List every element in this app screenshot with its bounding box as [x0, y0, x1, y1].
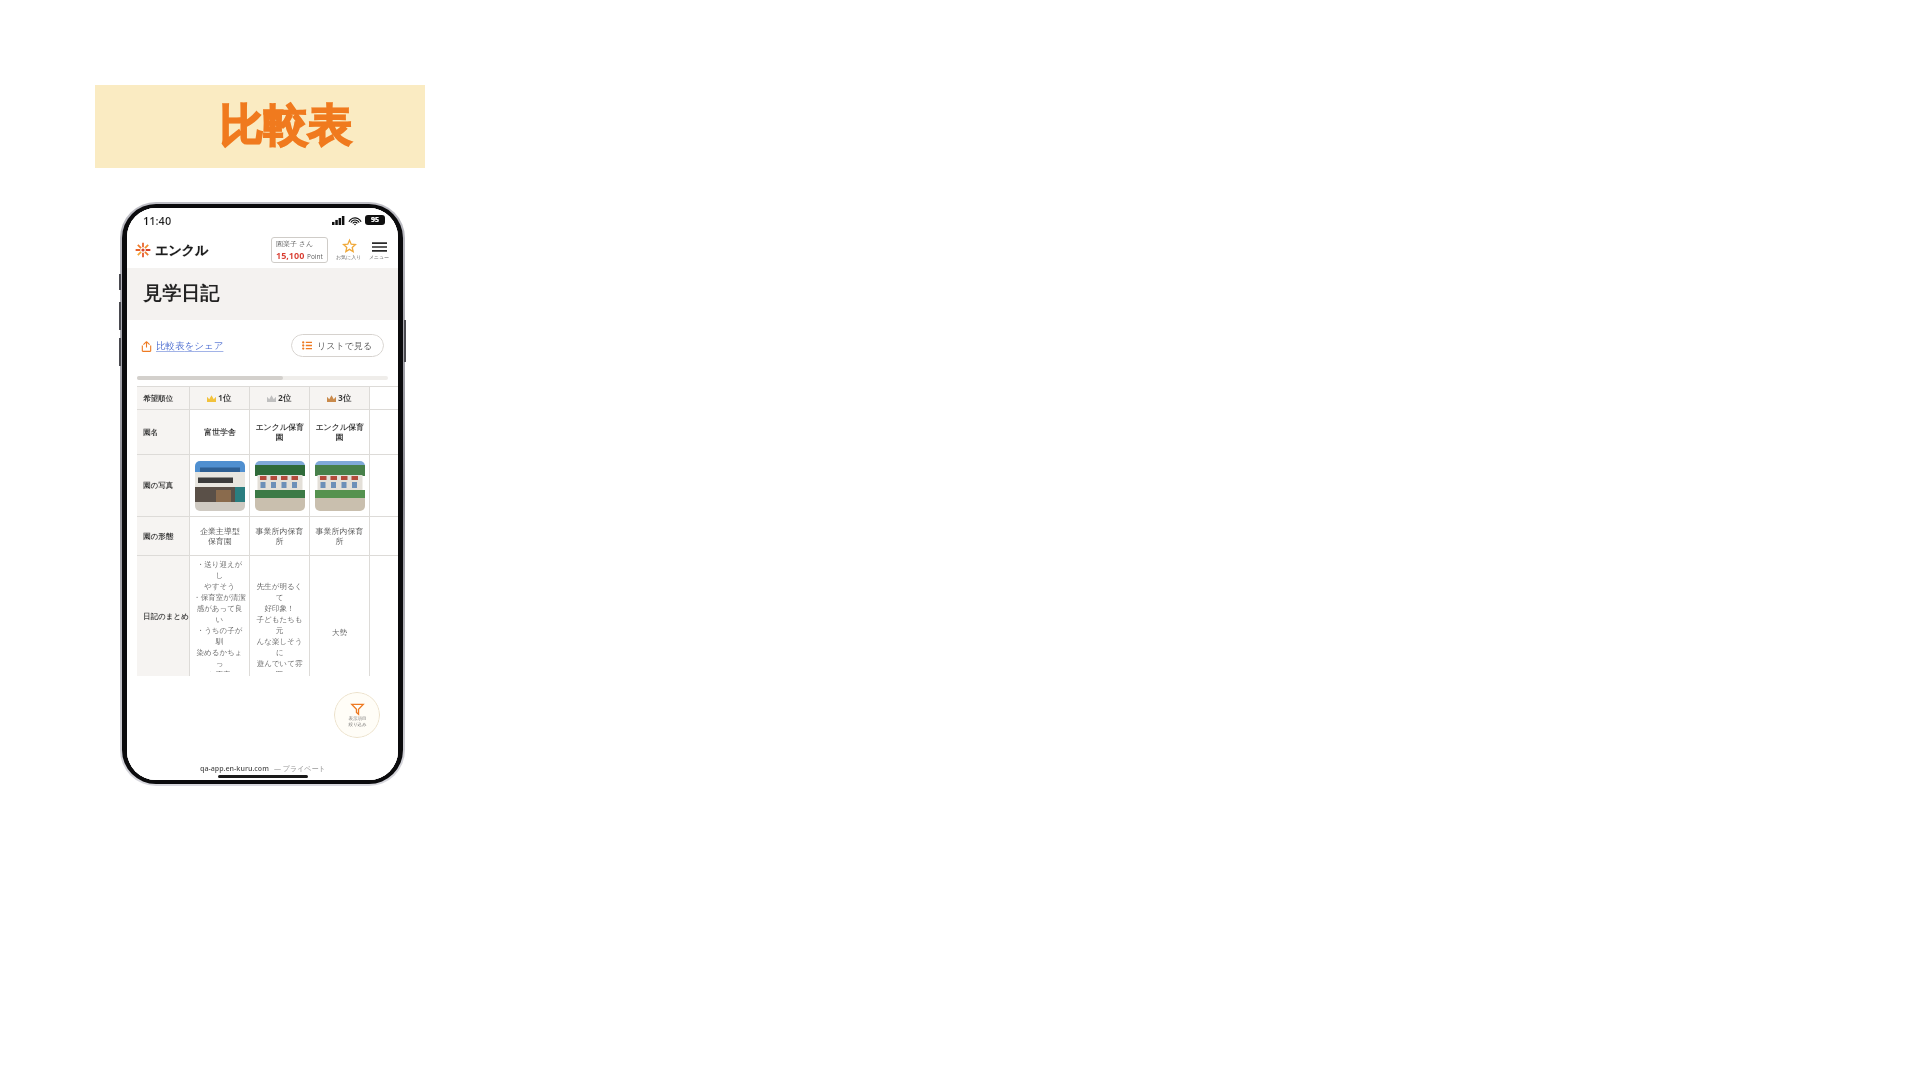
button[interactable]: 事業所内保育所: [310, 517, 369, 555]
button[interactable]: 園の形態: [137, 517, 189, 555]
button[interactable]: エンクル保育園: [310, 410, 369, 454]
button[interactable]: 1位: [190, 387, 249, 409]
button[interactable]: 園の写真: [250, 455, 309, 516]
button[interactable]: エンクル保育園: [250, 410, 309, 454]
button[interactable]: 園の写真: [310, 455, 369, 516]
staticText: エンクル保育園: [313, 422, 366, 443]
staticText: 3位: [338, 392, 352, 404]
button[interactable]: メニュー: [369, 241, 390, 260]
staticText: お気に入り: [336, 254, 362, 260]
staticText: 2位: [278, 392, 292, 404]
staticText: 園の写真: [143, 481, 174, 490]
staticText: エンクル: [155, 242, 209, 258]
button[interactable]: 日記のまとめ: [137, 556, 189, 676]
staticText: メニュー: [369, 254, 390, 260]
staticText: 希望順位: [143, 394, 173, 403]
staticText: 95: [371, 215, 380, 225]
staticText: 比較表: [219, 99, 351, 154]
staticText: 1位: [218, 392, 232, 404]
button[interactable]: 企業主導型 保育園: [190, 517, 249, 555]
staticText: エンクル保育園: [253, 422, 306, 443]
staticText: 見学日記: [143, 282, 219, 306]
button[interactable]: 園の写真: [190, 455, 249, 516]
staticText: 表示項目 絞り込み: [348, 716, 367, 728]
button[interactable]: 大勢: [310, 556, 369, 676]
staticText: qa-app.en-kuru.com: [200, 764, 269, 774]
staticText: 企業主導型 保育園: [200, 526, 240, 547]
button[interactable]: 園楽子 さん: [271, 237, 328, 263]
button[interactable]: 希望順位: [137, 387, 189, 409]
button[interactable]: リストで見る: [291, 334, 384, 357]
staticText: 事業所内保育所: [313, 526, 366, 547]
staticText: 先生が明るくて 好印象！ 子どもたちも元 んな楽しそうに 遊んでいて雰囲 気が良…: [253, 560, 306, 672]
staticText: Point: [307, 252, 323, 261]
button[interactable]: 表示項目絞り込み: [334, 692, 380, 738]
staticText: 園名: [143, 428, 158, 437]
staticText: — プライベート: [274, 764, 326, 774]
staticText: リストで見る: [317, 340, 373, 351]
staticText: 富世学舎: [204, 427, 236, 437]
button[interactable]: 園の写真: [137, 455, 189, 516]
button[interactable]: お気に入り: [336, 240, 362, 260]
staticText: 15,100: [276, 249, 305, 261]
staticText: 園の形態: [143, 532, 174, 541]
button[interactable]: 3位: [310, 387, 369, 409]
button[interactable]: 園名: [137, 410, 189, 454]
button[interactable]: 事業所内保育所: [250, 517, 309, 555]
staticText: 日記のまとめ: [143, 612, 189, 621]
staticText: 比較表をシェア: [156, 340, 224, 352]
staticText: 大勢: [332, 595, 347, 637]
staticText: ・送り迎えがし やすそう ・保育室が清潔 感があって良い ・うちの子が馴 染める…: [193, 560, 246, 672]
button[interactable]: 比較表をシェア: [141, 340, 224, 352]
button[interactable]: 先生が明るくて 好印象！ 子どもたちも元 んな楽しそうに 遊んでいて雰囲 気が良…: [250, 556, 309, 676]
staticText: 園楽子 さん: [276, 239, 314, 249]
button[interactable]: 富世学舎: [190, 410, 249, 454]
staticText: 事業所内保育所: [253, 526, 306, 547]
button[interactable]: 2位: [250, 387, 309, 409]
button[interactable]: ・送り迎えがし やすそう ・保育室が清潔 感があって良い ・うちの子が馴 染める…: [190, 556, 249, 676]
staticText: 11:40: [143, 213, 172, 228]
